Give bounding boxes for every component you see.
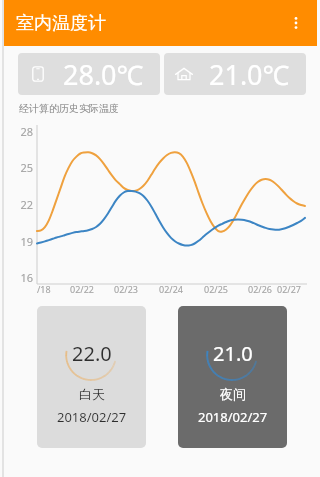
staticText: 02/23 xyxy=(106,283,146,295)
staticText: 室内温度计 xyxy=(16,12,106,35)
button[interactable]: 21.0 xyxy=(178,306,287,448)
button[interactable]: More options xyxy=(279,6,313,40)
staticText: 02/25 xyxy=(196,283,236,295)
staticText: 28 xyxy=(19,124,33,139)
staticText: 02/22 xyxy=(62,283,102,295)
staticText: 21.0 xyxy=(213,340,253,367)
staticText: 夜间 xyxy=(220,386,246,402)
staticText: 白天 xyxy=(79,386,105,402)
staticText: 2018/02/27 xyxy=(57,408,127,426)
staticText: 2018/02/27 xyxy=(198,408,268,426)
staticText: 02/24 xyxy=(151,283,191,295)
button[interactable]: 28.0℃ xyxy=(18,53,160,95)
staticText: 28.0℃ xyxy=(63,56,144,93)
staticText: 02/26 xyxy=(240,283,280,295)
staticText: 25 xyxy=(19,160,33,175)
staticText: /18 xyxy=(37,283,51,295)
staticText: 16 xyxy=(19,270,33,285)
staticText: 02/27 xyxy=(277,283,317,295)
staticText: 22.0 xyxy=(72,340,112,367)
staticText: 经计算的历史实际温度 xyxy=(19,102,119,115)
staticText: 22 xyxy=(19,197,33,212)
staticText: 21.0℃ xyxy=(209,56,290,93)
button[interactable]: 21.0℃ xyxy=(164,53,306,95)
staticText: 19 xyxy=(19,234,33,249)
button[interactable]: 22.0 xyxy=(37,306,146,448)
